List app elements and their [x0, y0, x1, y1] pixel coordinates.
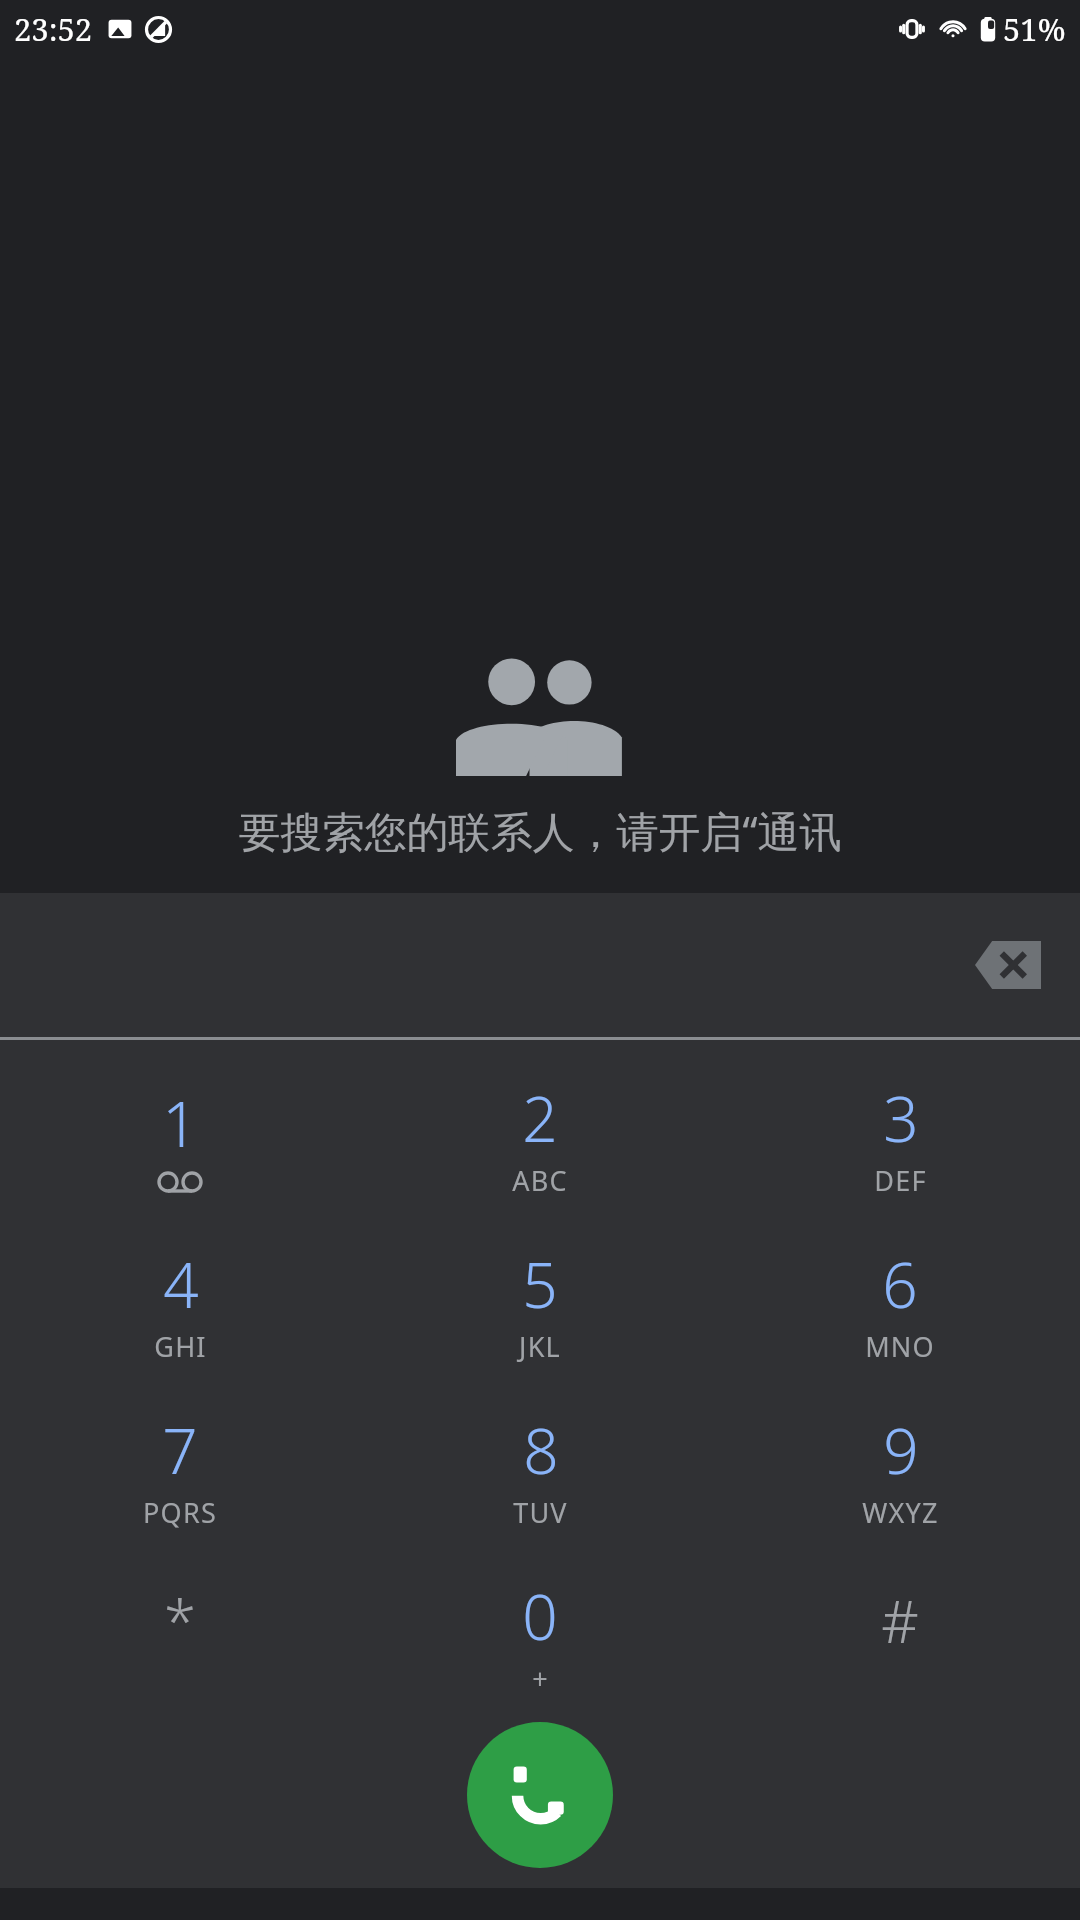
staticText: 0: [522, 1574, 558, 1658]
staticText: MNO: [865, 1328, 935, 1365]
button[interactable]: 3: [720, 1054, 1080, 1220]
staticText: 8: [523, 1408, 559, 1492]
staticText: 5: [522, 1242, 558, 1326]
staticText: JKL: [519, 1328, 561, 1365]
staticText: PQRS: [143, 1494, 217, 1531]
staticText: #: [881, 1581, 919, 1660]
staticText: 51%: [1003, 8, 1066, 50]
button[interactable]: #: [720, 1552, 1080, 1718]
button[interactable]: 7: [0, 1386, 360, 1552]
button[interactable]: 4: [0, 1220, 360, 1386]
staticText: 2: [522, 1076, 558, 1160]
staticText: TUV: [513, 1494, 568, 1531]
staticText: +: [532, 1660, 549, 1697]
staticText: 23:52: [14, 8, 93, 50]
staticText: 7: [162, 1408, 198, 1492]
staticText: WXYZ: [862, 1494, 939, 1531]
button[interactable]: 2: [360, 1054, 720, 1220]
button[interactable]: Backspace: [948, 917, 1068, 1013]
staticText: 要搜索您的联系人，请开启“通讯: [238, 802, 842, 859]
staticText: 1: [162, 1081, 198, 1165]
staticText: 3: [883, 1076, 919, 1160]
staticText: 9: [883, 1408, 919, 1492]
staticText: GHI: [154, 1328, 207, 1365]
staticText: 4: [163, 1242, 199, 1326]
button[interactable]: 0: [360, 1552, 720, 1718]
button[interactable]: 5: [360, 1220, 720, 1386]
staticText: *: [164, 1581, 196, 1660]
staticText: ABC: [512, 1162, 568, 1199]
button[interactable]: Call: [467, 1722, 613, 1868]
button[interactable]: 9: [720, 1386, 1080, 1552]
staticText: DEF: [874, 1162, 927, 1199]
button[interactable]: 8: [360, 1386, 720, 1552]
button[interactable]: 6: [720, 1220, 1080, 1386]
staticText: 6: [882, 1242, 918, 1326]
button[interactable]: *: [0, 1552, 360, 1718]
button[interactable]: 1: [0, 1054, 360, 1220]
